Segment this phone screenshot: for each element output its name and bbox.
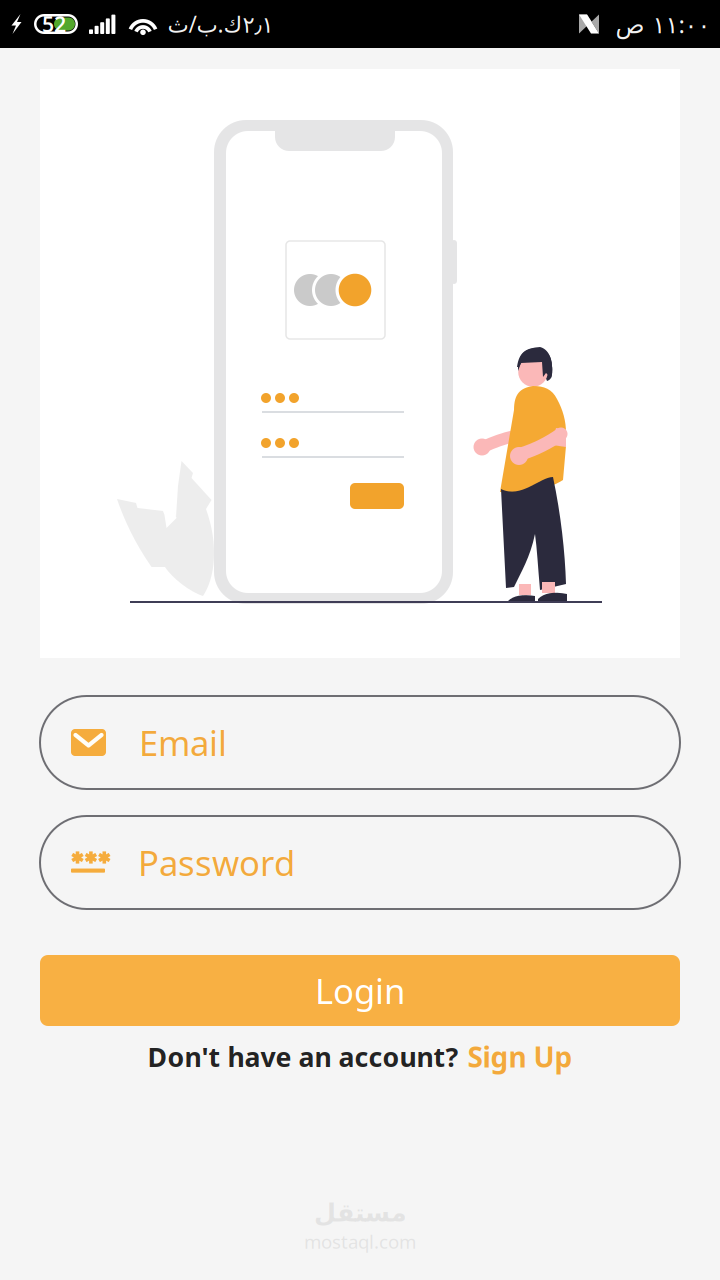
staticText: ١١:٠٠ ص	[615, 8, 710, 40]
staticText: Login	[315, 967, 405, 1013]
staticText: Email	[139, 719, 227, 765]
button[interactable]: Sign Up	[467, 1038, 572, 1075]
staticText: ٢٫١ك.ب/ث	[167, 9, 273, 39]
button[interactable]: Email	[40, 696, 680, 789]
staticText: Don't have an account?	[147, 1039, 458, 1074]
button[interactable]: Login	[40, 955, 680, 1026]
staticText: Sign Up	[467, 1038, 572, 1075]
staticText: Password	[138, 839, 295, 885]
button[interactable]: Password	[40, 816, 680, 909]
staticText: mostaql.com	[304, 1229, 416, 1254]
staticText: 52	[42, 10, 66, 38]
staticText: مستقل	[313, 1198, 406, 1227]
